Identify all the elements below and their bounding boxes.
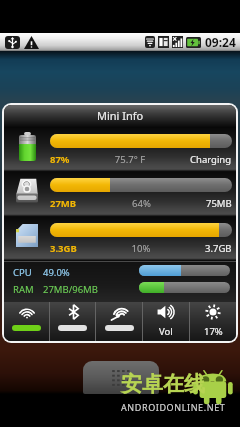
staticText: 09:24: [205, 34, 236, 50]
button[interactable]: Volume: [143, 302, 189, 341]
button[interactable]: 87%: [4, 128, 236, 172]
staticText: RAM: [13, 283, 43, 296]
staticText: 10%: [77, 242, 205, 255]
staticText: Mini Info: [97, 108, 144, 123]
staticText: Vol: [159, 325, 173, 338]
button[interactable]: All apps: [83, 361, 159, 394]
staticText: 3.3GB: [50, 242, 77, 255]
staticText: Charging: [190, 153, 232, 166]
staticText: 75.7° F: [70, 153, 190, 166]
staticText: 27MB/96MB: [43, 283, 98, 296]
staticText: 3.7GB: [205, 242, 232, 255]
staticText: 17%: [204, 325, 223, 338]
staticText: 49.0%: [43, 266, 70, 279]
staticText: 27MB: [50, 197, 77, 210]
staticText: 64%: [77, 197, 206, 210]
staticText: CPU: [13, 266, 43, 279]
staticText: ANDROIDONLINE.NET: [121, 401, 226, 413]
button[interactable]: 3.3GB: [4, 217, 236, 261]
button[interactable]: Brightness: [190, 302, 236, 341]
button[interactable]: 27MB: [4, 172, 236, 217]
button[interactable]: Wi-Fi: [4, 302, 49, 341]
button[interactable]: GPS: [96, 302, 142, 341]
staticText: 安卓在线: [121, 371, 205, 397]
staticText: 75MB: [206, 197, 232, 210]
button[interactable]: Bluetooth: [50, 302, 95, 341]
staticText: 87%: [50, 153, 70, 166]
